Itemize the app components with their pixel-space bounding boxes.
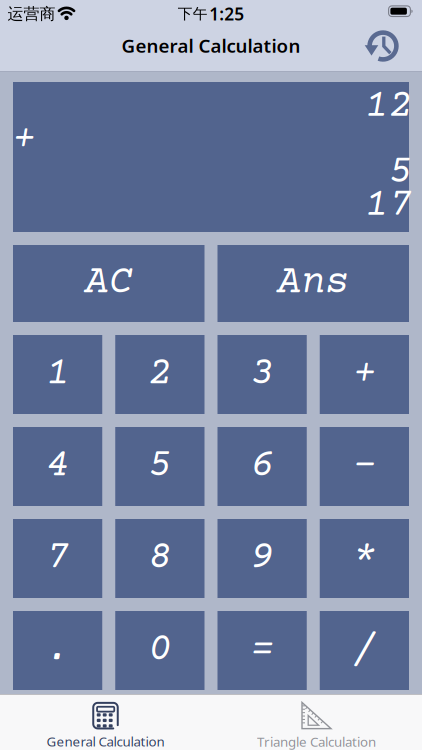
button[interactable]: 3 [217, 335, 307, 414]
staticText: 9 [250, 536, 274, 581]
staticText: 5 [148, 444, 172, 489]
button[interactable]: 6 [217, 427, 307, 506]
button[interactable]: 2 [115, 335, 204, 414]
staticText: 12 [364, 84, 412, 129]
staticText: AC [85, 261, 133, 306]
staticText: + [12, 117, 36, 162]
button[interactable]: Triangle Calculation [211, 701, 422, 750]
button[interactable]: = [217, 611, 307, 690]
button[interactable]: 7 [13, 519, 102, 598]
staticText: 1 [46, 352, 70, 397]
button[interactable]: 9 [217, 519, 307, 598]
staticText: Triangle Calculation [257, 733, 376, 750]
staticText: 7 [46, 536, 70, 581]
button[interactable]: 0 [115, 611, 204, 690]
staticText: = [250, 628, 274, 673]
staticText: General Calculation [46, 732, 164, 750]
staticText: 6 [250, 444, 274, 489]
button[interactable]: General Calculation [0, 701, 211, 750]
staticText: 5 [388, 150, 412, 195]
button[interactable]: * [320, 519, 409, 598]
button[interactable]: History [364, 27, 402, 65]
button[interactable]: . [13, 611, 102, 690]
button[interactable]: 8 [115, 519, 204, 598]
staticText: 8 [148, 536, 172, 581]
button[interactable]: Ans [217, 245, 409, 322]
button[interactable]: 1 [13, 335, 102, 414]
staticText: * [352, 536, 376, 581]
staticText: 2 [148, 352, 172, 397]
button[interactable]: AC [13, 245, 204, 322]
staticText: 4 [46, 444, 70, 489]
button[interactable]: + [320, 335, 409, 414]
staticText: 17 [364, 183, 412, 228]
staticText: - [352, 444, 376, 489]
staticText: 3 [250, 352, 274, 397]
staticText: . [46, 628, 70, 673]
staticText: 0 [148, 628, 172, 673]
staticText: 下午 [178, 5, 208, 23]
staticText: 运营商 [7, 4, 55, 24]
button[interactable]: 5 [115, 427, 204, 506]
staticText: / [352, 628, 376, 673]
button[interactable]: - [320, 427, 409, 506]
staticText: Ans [277, 261, 349, 306]
staticText: 1:25 [209, 2, 244, 25]
button[interactable]: / [320, 611, 409, 690]
staticText: General Calculation [121, 33, 300, 58]
button[interactable]: 4 [13, 427, 102, 506]
staticText: + [352, 352, 376, 397]
